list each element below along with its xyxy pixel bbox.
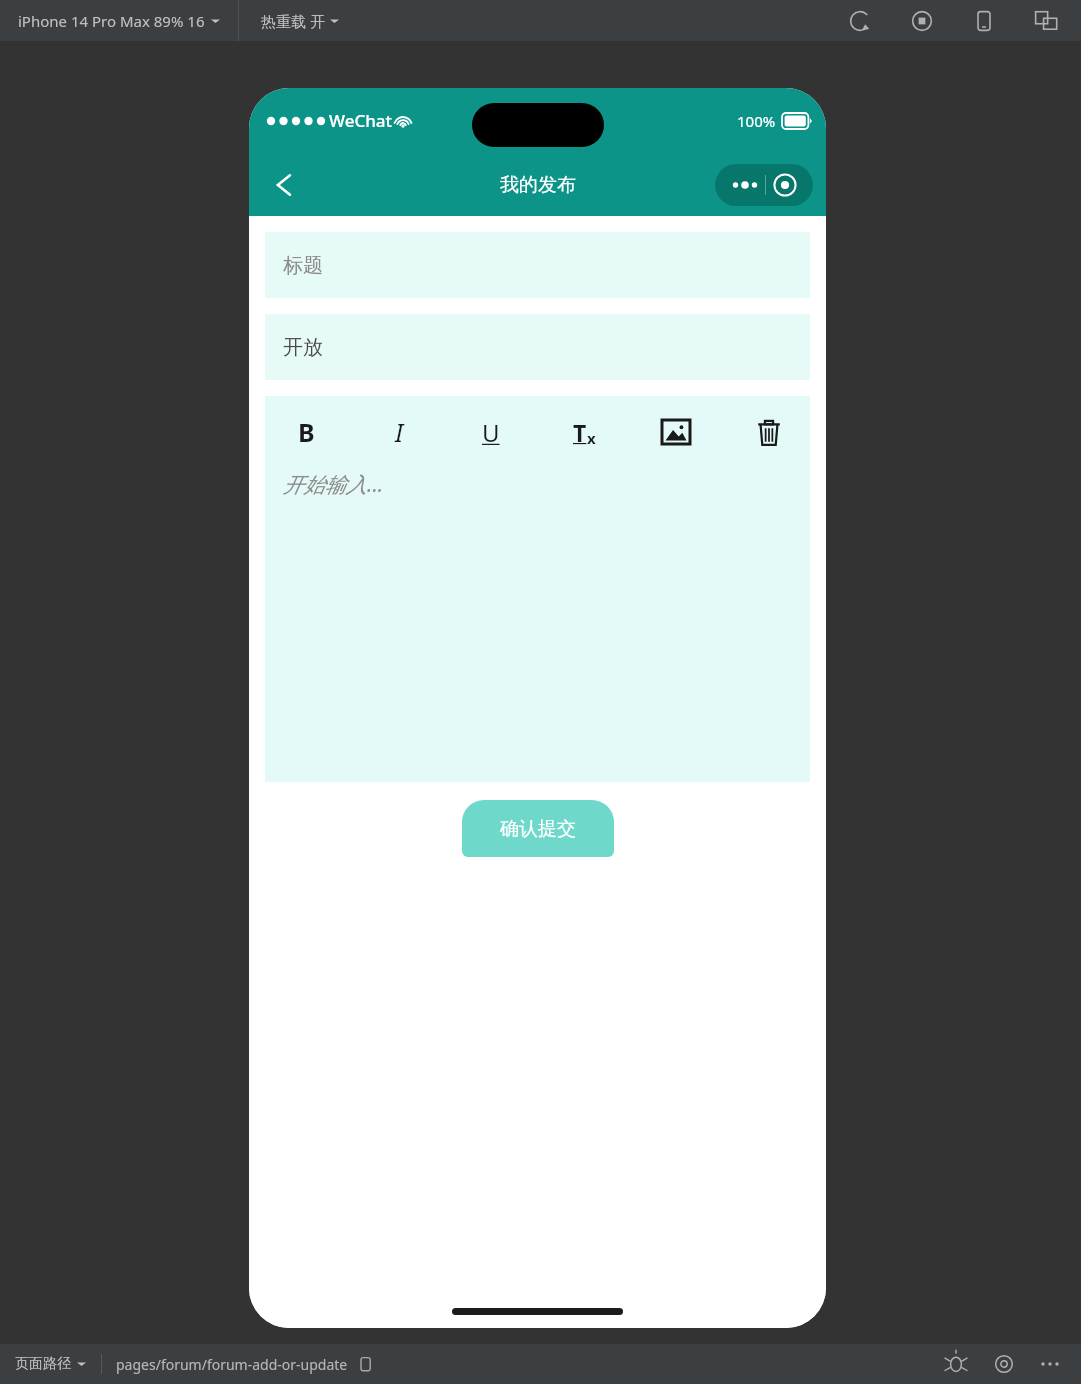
- button[interactable]: Back: [259, 163, 303, 207]
- staticText: x: [587, 428, 596, 448]
- button[interactable]: Copy path: [356, 1354, 376, 1374]
- staticText: B: [298, 415, 315, 449]
- button[interactable]: Menu and close: [715, 164, 813, 206]
- staticText: U: [482, 416, 500, 449]
- staticText: 标题: [283, 253, 323, 278]
- staticText: 100%: [737, 111, 776, 131]
- staticText: 确认提交: [500, 817, 576, 841]
- button[interactable]: Refresh: [847, 8, 873, 34]
- staticText: 开放: [283, 335, 323, 360]
- button[interactable]: Insert image: [653, 409, 699, 455]
- button[interactable]: Bold: [283, 409, 329, 455]
- staticText: 热重载 开: [261, 11, 325, 31]
- button[interactable]: 标题: [265, 232, 810, 298]
- button[interactable]: 热重载 开: [257, 11, 343, 31]
- staticText: 开始输入...: [283, 470, 384, 499]
- button[interactable]: Device: [971, 8, 997, 34]
- button[interactable]: Italic: [376, 409, 422, 455]
- staticText: 我的发布: [500, 173, 576, 197]
- button[interactable]: 确认提交: [462, 800, 614, 857]
- button[interactable]: Delete: [746, 409, 792, 455]
- button[interactable]: Panels: [1033, 8, 1059, 34]
- staticText: 页面路径: [15, 1355, 71, 1373]
- staticText: I: [395, 415, 404, 449]
- button[interactable]: 页面路径: [12, 1355, 89, 1373]
- button[interactable]: Underline: [468, 409, 514, 455]
- button[interactable]: Debug: [943, 1351, 969, 1377]
- button[interactable]: 开放: [265, 314, 810, 380]
- button[interactable]: Preview: [991, 1351, 1017, 1377]
- button[interactable]: Stop: [909, 8, 935, 34]
- button[interactable]: Clear formatting: [561, 409, 607, 455]
- staticText: T: [573, 417, 587, 448]
- staticText: WeChat: [329, 109, 393, 132]
- staticText: iPhone 14 Pro Max 89% 16: [18, 11, 205, 31]
- button[interactable]: iPhone 14 Pro Max 89% 16: [14, 11, 224, 31]
- button[interactable]: More: [1037, 1351, 1063, 1377]
- staticText: pages/forum/forum-add-or-update: [116, 1355, 348, 1374]
